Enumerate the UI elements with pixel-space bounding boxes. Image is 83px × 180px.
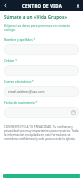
button[interactable]: Account <box>73 0 83 11</box>
staticText: email.address@uso.com <box>8 90 45 94</box>
staticText: CON RESPECTO A TU PRIVACIDAD: Tu confian… <box>4 125 79 141</box>
button[interactable]: Continue <box>3 174 80 178</box>
staticText: Súmate a un «Vida Grupos» <box>4 14 68 20</box>
staticText: Nombre y apellidos * <box>4 38 36 42</box>
staticText: Celular * <box>4 59 17 63</box>
staticText: Fecha de nacimiento * <box>4 101 38 105</box>
staticText: Déjanos tus datos para ponernos en conta… <box>4 24 79 32</box>
button[interactable]: Back <box>0 0 10 11</box>
button[interactable]: Pick date <box>4 107 79 118</box>
staticText: CENTRO DE VIDA <box>22 3 62 9</box>
button[interactable]: Pick date <box>71 110 76 115</box>
staticText: Correo electrónico * <box>4 80 34 84</box>
button[interactable]: email.address@uso.com <box>4 86 79 97</box>
